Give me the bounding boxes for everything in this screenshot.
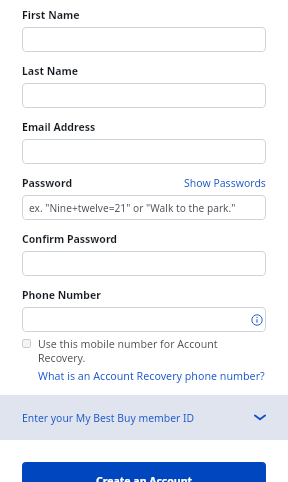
button[interactable]: Use this mobile number for Account Recov… — [22, 339, 31, 348]
button[interactable]: Show Passwords — [184, 176, 266, 190]
button[interactable]: Confirm Password — [22, 251, 266, 276]
button[interactable]: What is an Account Recovery phone number… — [38, 369, 265, 384]
staticText: First Name — [22, 8, 80, 22]
staticText: What is an Account Recovery phone number… — [38, 369, 265, 384]
button[interactable]: Enter your My Best Buy member ID — [0, 395, 288, 440]
button[interactable]: Last Name — [22, 83, 266, 108]
staticText: Confirm Password — [22, 232, 118, 246]
button[interactable]: Phone Number — [22, 307, 266, 332]
other: More information — [251, 314, 263, 326]
button[interactable]: Password — [22, 195, 266, 220]
staticText: Password — [22, 176, 73, 190]
staticText: Show Passwords — [184, 176, 266, 190]
staticText: Phone Number — [22, 288, 101, 302]
button[interactable]: Email Address — [22, 139, 266, 164]
staticText: Use this mobile number for Account Recov… — [38, 337, 218, 365]
staticText: ex. "Nine+twelve=21" or "Walk to the par… — [29, 201, 236, 215]
button[interactable]: Create an Account — [22, 462, 266, 482]
staticText: Enter your My Best Buy member ID — [22, 411, 195, 425]
staticText: Create an Account — [96, 474, 193, 482]
staticText: Email Address — [22, 120, 96, 134]
button[interactable]: First Name — [22, 27, 266, 52]
staticText: Last Name — [22, 64, 79, 78]
